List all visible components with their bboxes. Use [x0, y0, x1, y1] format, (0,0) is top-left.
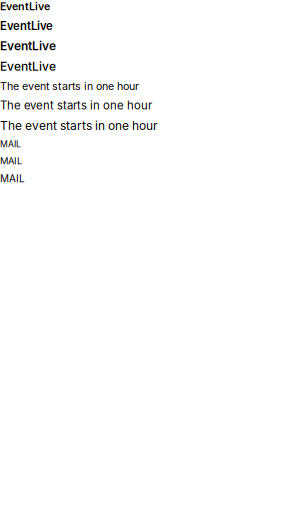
- staticText: The event starts in one hour: [0, 99, 152, 112]
- staticText: The event starts in one hour: [0, 118, 158, 133]
- staticText: EventLive: [0, 39, 56, 53]
- staticText: EventLive: [0, 59, 56, 74]
- staticText: MAIL: [0, 139, 21, 149]
- staticText: EventLive: [0, 0, 50, 13]
- staticText: MAIL: [0, 173, 25, 185]
- staticText: MAIL: [0, 155, 22, 167]
- staticText: The event starts in one hour: [0, 80, 139, 93]
- staticText: EventLive: [0, 19, 53, 33]
